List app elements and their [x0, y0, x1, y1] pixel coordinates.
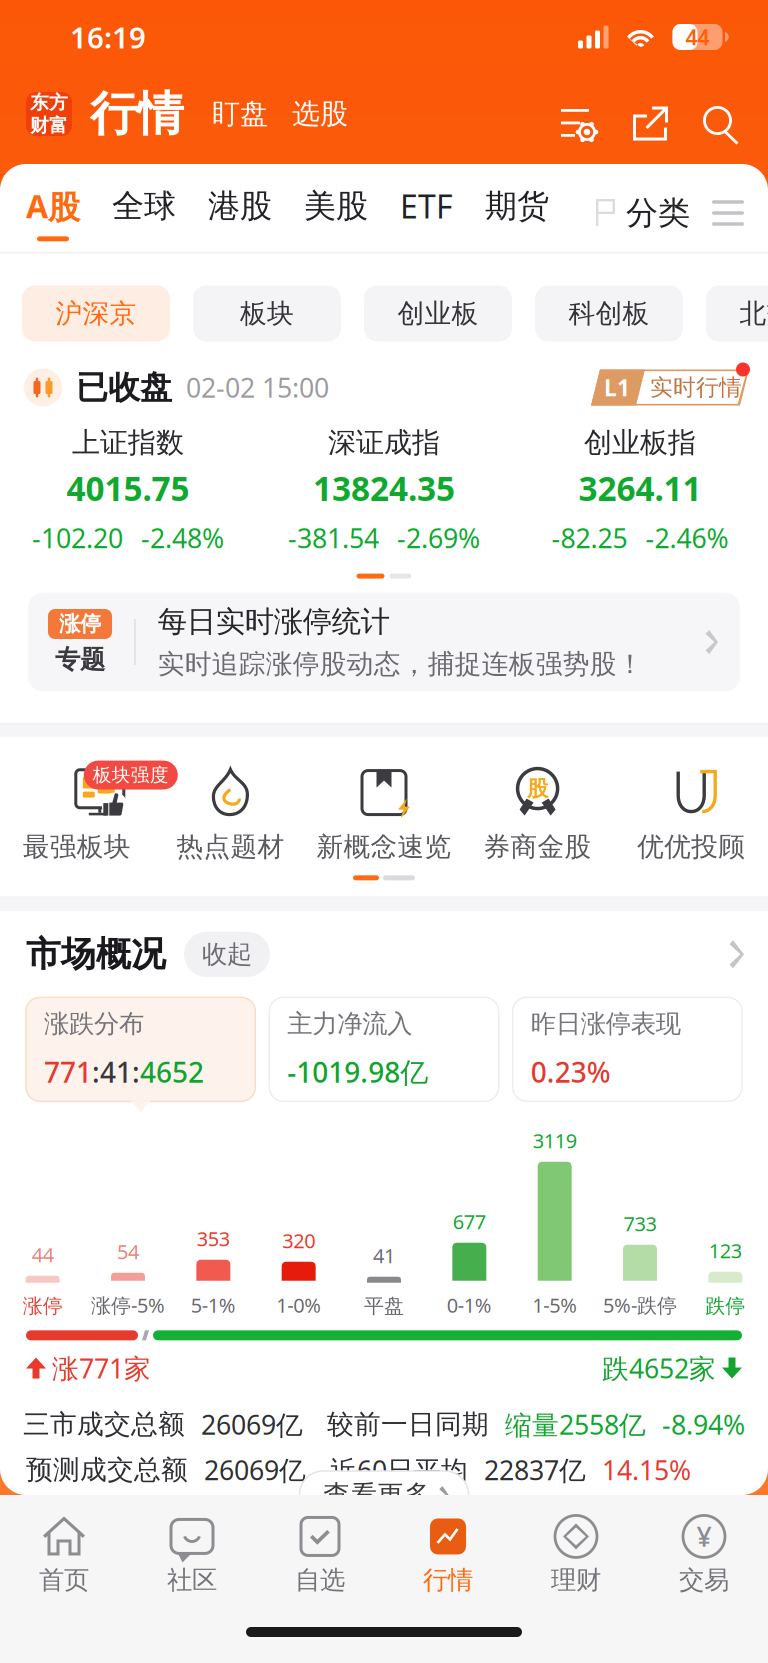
staticText: 沪深京 — [55, 297, 136, 330]
staticText: 涨停 — [23, 1294, 63, 1318]
button[interactable]: 优优投顾 — [614, 767, 768, 863]
button[interactable]: 股 — [461, 767, 614, 863]
staticText: 每日实时涨停统计 — [158, 604, 390, 640]
button[interactable]: 创业板指 — [512, 425, 768, 556]
button[interactable]: 板块 — [193, 285, 341, 341]
staticText: 市场概况 — [26, 933, 166, 976]
button[interactable]: 主力净流入 — [269, 997, 499, 1101]
button[interactable]: Search — [671, 88, 740, 140]
staticText: 券商金股 — [484, 831, 592, 863]
staticText: 123 — [709, 1237, 742, 1264]
staticText: 期货 — [485, 186, 549, 226]
button[interactable]: 上证指数 — [0, 425, 256, 556]
staticText: 热点题材 — [176, 831, 284, 863]
button[interactable]: 深证成指 — [256, 425, 512, 556]
button[interactable]: Filter settings — [561, 91, 598, 137]
staticText: 首页 — [39, 1564, 89, 1595]
staticText: 全球 — [112, 186, 176, 226]
staticText: 44 — [685, 23, 709, 51]
button[interactable]: Share — [598, 89, 671, 138]
staticText: 实时行情 — [650, 374, 742, 401]
button[interactable]: 期货 — [485, 186, 581, 240]
button[interactable]: 首页 — [0, 1495, 128, 1599]
staticText: 1-0% — [276, 1292, 321, 1318]
staticText: 4652 — [140, 1053, 204, 1090]
staticText: 近60日平均 — [330, 1452, 468, 1488]
staticText: 3119 — [533, 1127, 577, 1154]
staticText: 41 — [373, 1242, 395, 1269]
staticText: 东方 — [30, 91, 68, 114]
staticText: 14.15% — [602, 1452, 691, 1488]
staticText: 涨跌分布 — [44, 1008, 144, 1039]
button[interactable]: 收起 — [166, 932, 270, 977]
staticText: 新概念速览 — [316, 831, 451, 863]
staticText: 26069亿 — [201, 1407, 303, 1442]
staticText: 54 — [117, 1238, 139, 1265]
button[interactable]: 新概念速览 — [307, 767, 461, 863]
staticText: -8.94% — [662, 1407, 745, 1442]
staticText: 自选 — [295, 1564, 345, 1595]
button[interactable]: 科创板 — [535, 285, 683, 341]
staticText: 港股 — [208, 186, 272, 226]
staticText: -82.25 — [551, 520, 627, 556]
button[interactable]: 创业板 — [364, 285, 512, 341]
button[interactable]: 板块强度 — [0, 767, 154, 863]
button[interactable]: 行情 — [384, 1495, 512, 1599]
staticText: 677 — [453, 1208, 486, 1235]
staticText: 交易 — [679, 1564, 729, 1595]
staticText: 跌4652家 — [602, 1350, 716, 1386]
staticText: 理财 — [551, 1564, 601, 1595]
button[interactable]: 盯盘 — [184, 89, 268, 139]
button[interactable]: 理财 — [512, 1495, 640, 1599]
button[interactable]: A股 — [26, 185, 112, 241]
staticText: 盯盘 — [212, 97, 268, 131]
button[interactable]: Market overview details — [713, 932, 744, 976]
staticText: 5%-跌停 — [603, 1292, 677, 1318]
button[interactable]: 自选 — [256, 1495, 384, 1599]
staticText: 查看更多 — [323, 1479, 431, 1511]
button[interactable]: ETF — [400, 185, 485, 241]
button[interactable]: 热点题材 — [154, 767, 307, 863]
staticText: 昨日涨停表现 — [531, 1008, 681, 1039]
staticText: A股 — [26, 185, 80, 227]
staticText: 733 — [623, 1210, 656, 1237]
staticText: 02-02 15:00 — [186, 370, 329, 405]
staticText: 优优投顾 — [637, 831, 745, 863]
staticText: 771 — [44, 1053, 92, 1090]
staticText: 三市成交总额 — [23, 1408, 185, 1441]
button[interactable]: 美股 — [304, 186, 400, 240]
staticText: 44 — [32, 1241, 54, 1268]
staticText: -1019.98亿 — [287, 1053, 428, 1090]
button[interactable]: 涨跌分布 — [26, 997, 255, 1101]
staticText: 创业板 — [397, 297, 478, 330]
staticText: 较前一日同期 — [327, 1408, 489, 1441]
button[interactable]: 全球 — [112, 186, 208, 240]
staticText: 已收盘 — [76, 368, 172, 407]
staticText: 北交所 — [739, 297, 768, 330]
staticText: 预测成交总额 — [26, 1453, 188, 1486]
staticText: -2.69% — [397, 520, 480, 556]
staticText: -102.20 — [32, 520, 123, 556]
staticText: 320 — [282, 1227, 315, 1254]
button[interactable]: 分类 — [596, 185, 690, 241]
staticText: 13824.35 — [313, 466, 455, 510]
staticText: 22837亿 — [484, 1452, 586, 1488]
button[interactable]: ¥ — [640, 1495, 768, 1599]
staticText: 353 — [197, 1225, 230, 1252]
button[interactable]: 社区 — [128, 1495, 256, 1599]
button[interactable]: 沪深京 — [22, 285, 170, 341]
staticText: 涨停 — [59, 611, 101, 637]
button[interactable]: All categories — [690, 192, 744, 233]
staticText: 选股 — [292, 97, 348, 131]
staticText: 1-5% — [532, 1292, 577, 1318]
button[interactable]: 涨停 — [0, 593, 768, 692]
button[interactable]: 港股 — [208, 186, 304, 240]
button[interactable]: 选股 — [268, 89, 348, 139]
button[interactable]: 昨日涨停表现 — [513, 997, 742, 1101]
staticText: 财富 — [30, 114, 68, 137]
button[interactable]: 北交所 — [706, 285, 768, 341]
staticText: 科创板 — [568, 297, 649, 330]
staticText: 主力净流入 — [287, 1008, 412, 1039]
staticText: 专题 — [55, 644, 105, 675]
button[interactable]: 查看更多 — [299, 1471, 469, 1519]
